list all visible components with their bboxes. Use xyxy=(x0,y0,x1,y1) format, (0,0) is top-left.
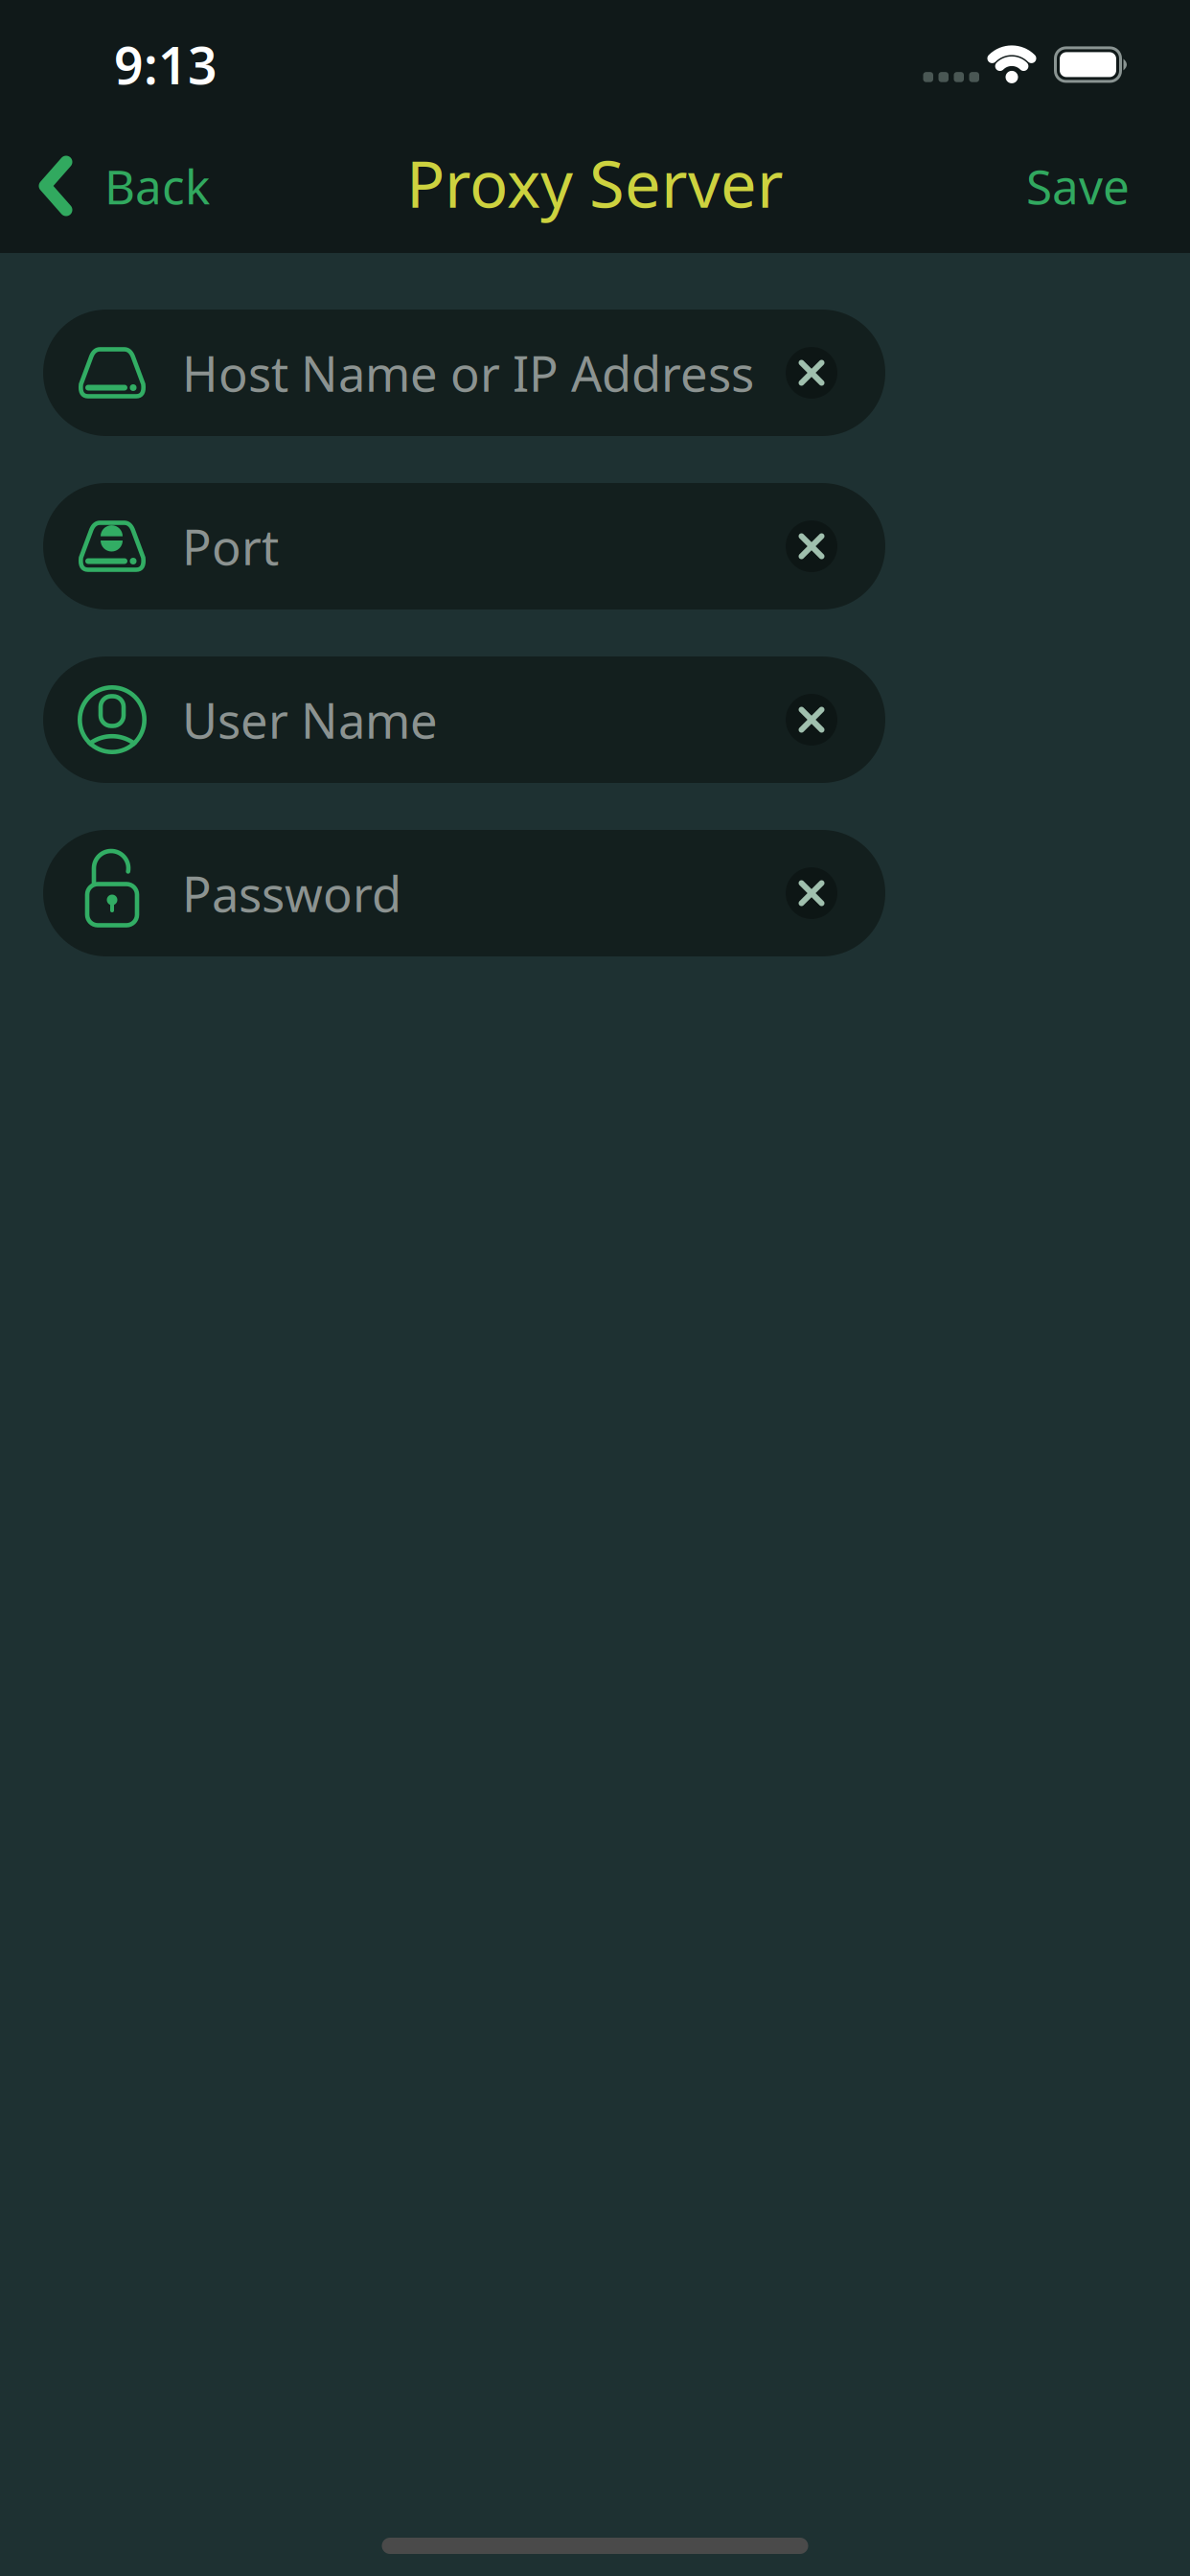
button[interactable]: Port xyxy=(43,483,885,609)
button[interactable]: Clear text xyxy=(786,867,837,919)
staticText: Save xyxy=(1026,154,1130,217)
button[interactable]: Save xyxy=(1026,154,1190,217)
button[interactable]: Back xyxy=(0,154,210,217)
staticText: Port xyxy=(182,514,279,579)
staticText: Host Name or IP Address xyxy=(182,341,754,405)
button[interactable]: Host Name or IP Address xyxy=(43,310,885,436)
staticText: 9:13 xyxy=(114,31,217,99)
button[interactable]: User Name xyxy=(43,656,885,783)
button[interactable]: Password xyxy=(43,830,885,956)
button[interactable]: Clear text xyxy=(786,347,837,399)
staticText: Password xyxy=(182,861,401,925)
button[interactable]: Clear text xyxy=(786,520,837,572)
button[interactable]: Clear text xyxy=(786,694,837,746)
staticText: Back xyxy=(104,154,210,217)
staticText: Proxy Server xyxy=(406,141,784,225)
staticText: User Name xyxy=(182,688,438,752)
